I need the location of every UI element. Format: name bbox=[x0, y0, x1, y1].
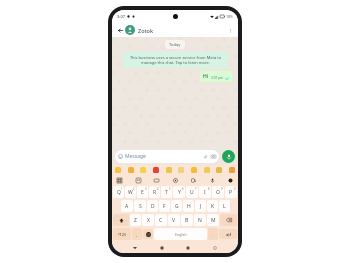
staticText: T bbox=[165, 189, 168, 196]
button[interactable]: Emoji bbox=[216, 167, 222, 173]
staticText: X bbox=[147, 217, 150, 224]
button[interactable]: T bbox=[161, 186, 172, 198]
button[interactable]: Keyboard tool bbox=[172, 177, 179, 184]
staticText: W bbox=[128, 189, 133, 196]
button[interactable]: Emoji bbox=[166, 167, 172, 173]
button[interactable]: Keyboard tool bbox=[135, 177, 142, 184]
staticText: E bbox=[141, 189, 144, 196]
button[interactable]: D bbox=[147, 200, 158, 212]
button[interactable]: M bbox=[207, 214, 219, 226]
button[interactable]: V bbox=[168, 214, 180, 226]
staticText: R bbox=[153, 189, 157, 196]
button[interactable]: F bbox=[159, 200, 170, 212]
staticText: 5 bbox=[169, 187, 171, 191]
staticText: L bbox=[223, 203, 226, 210]
button[interactable]: J bbox=[195, 200, 206, 212]
staticText: N bbox=[198, 217, 202, 224]
staticText: This business uses a secure service from… bbox=[127, 55, 224, 65]
staticText: Z bbox=[134, 217, 137, 224]
staticText: 4 bbox=[157, 187, 159, 191]
staticText: I bbox=[204, 189, 206, 196]
staticText: ?123 bbox=[118, 232, 126, 237]
button[interactable]: Emoji bbox=[191, 167, 197, 173]
button[interactable]: Emoji bbox=[128, 167, 134, 173]
button[interactable]: Emoji bbox=[140, 167, 146, 173]
button[interactable]: E bbox=[137, 186, 148, 198]
staticText: S bbox=[139, 203, 142, 210]
staticText: P bbox=[229, 189, 233, 196]
button[interactable]: Back bbox=[116, 26, 124, 34]
button[interactable]: Emoji bbox=[153, 167, 159, 173]
staticText: , bbox=[136, 232, 138, 237]
button[interactable]: Voice message bbox=[222, 150, 235, 163]
button[interactable]: X bbox=[142, 214, 154, 226]
button[interactable]: Z bbox=[130, 214, 141, 226]
button[interactable]: S bbox=[134, 200, 146, 212]
staticText: 3 bbox=[145, 187, 147, 191]
button[interactable]: I bbox=[199, 186, 211, 198]
staticText: 7 bbox=[195, 187, 197, 191]
staticText: Today bbox=[169, 42, 181, 47]
button[interactable]: ?123 bbox=[113, 228, 131, 240]
button[interactable]: Backspace bbox=[220, 214, 237, 226]
staticText: V bbox=[172, 217, 176, 224]
button[interactable]: N bbox=[194, 214, 206, 226]
button[interactable]: Enter bbox=[219, 229, 237, 239]
button[interactable]: . bbox=[208, 228, 218, 240]
button[interactable]: More options bbox=[226, 26, 234, 34]
button[interactable]: Q bbox=[113, 186, 124, 198]
button[interactable]: Back bbox=[131, 244, 139, 252]
staticText: 18% bbox=[226, 14, 233, 19]
button[interactable]: L bbox=[219, 200, 230, 212]
staticText: M bbox=[211, 217, 216, 224]
button[interactable]: Language bbox=[143, 229, 153, 239]
button[interactable]: W bbox=[125, 186, 136, 198]
staticText: Hi bbox=[203, 73, 209, 80]
other: Camera bbox=[211, 154, 216, 159]
button[interactable]: Shift bbox=[113, 214, 129, 226]
staticText: Y bbox=[178, 189, 181, 196]
button[interactable]: Emoji bbox=[178, 167, 184, 173]
staticText: 1 bbox=[121, 187, 123, 191]
staticText: B bbox=[185, 217, 189, 224]
button[interactable]: C bbox=[155, 214, 167, 226]
button[interactable]: P bbox=[225, 186, 237, 198]
button[interactable]: Emoji bbox=[204, 167, 210, 173]
button[interactable]: Home bbox=[158, 244, 166, 252]
staticText: G bbox=[175, 203, 179, 210]
staticText: . bbox=[212, 232, 214, 237]
button[interactable]: , bbox=[132, 228, 142, 240]
button[interactable]: Zotok bbox=[125, 23, 226, 37]
button[interactable]: Keyboard tool bbox=[209, 177, 216, 184]
button[interactable]: G bbox=[171, 200, 182, 212]
button[interactable]: Keyboard tool bbox=[227, 177, 234, 184]
staticText: 8 bbox=[208, 187, 210, 191]
button[interactable]: O bbox=[212, 186, 224, 198]
button[interactable]: R bbox=[149, 186, 160, 198]
button[interactable]: Message bbox=[115, 150, 219, 163]
button[interactable]: Keyboard tool bbox=[116, 177, 123, 184]
button[interactable]: Y bbox=[173, 186, 185, 198]
button[interactable]: Settings bbox=[211, 244, 219, 252]
button[interactable]: Recents bbox=[184, 244, 192, 252]
button[interactable]: Emoji bbox=[115, 167, 121, 173]
button[interactable]: Keyboard tool bbox=[190, 177, 197, 184]
button[interactable]: B bbox=[181, 214, 193, 226]
staticText: English bbox=[175, 232, 187, 237]
button[interactable]: Emoji bbox=[229, 167, 235, 173]
button[interactable]: A bbox=[121, 200, 133, 212]
staticText: H bbox=[187, 203, 191, 210]
staticText: 0 bbox=[234, 187, 236, 191]
staticText: J bbox=[200, 203, 202, 210]
staticText: 3:07 pm bbox=[211, 76, 224, 80]
staticText: A bbox=[125, 203, 129, 210]
staticText: 3:07 bbox=[117, 14, 125, 19]
button[interactable]: English bbox=[154, 228, 207, 240]
button[interactable]: Keyboard tool bbox=[153, 177, 160, 184]
staticText: 9 bbox=[221, 187, 223, 191]
staticText: U bbox=[190, 189, 194, 196]
button[interactable]: K bbox=[207, 200, 218, 212]
button[interactable]: H bbox=[183, 200, 194, 212]
button[interactable]: U bbox=[186, 186, 198, 198]
staticText: D bbox=[151, 203, 155, 210]
